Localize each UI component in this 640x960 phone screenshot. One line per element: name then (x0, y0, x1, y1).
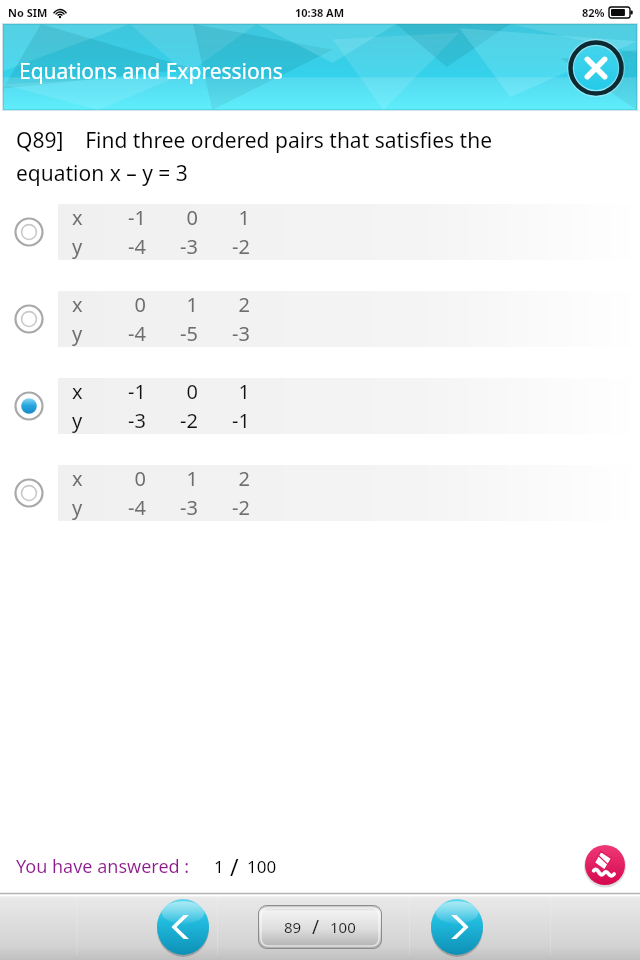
staticText: 1 (238, 204, 250, 231)
staticText: -2 (180, 407, 198, 434)
button[interactable]: x (0, 204, 640, 260)
staticText: 89 (284, 917, 302, 937)
button[interactable]: x (0, 291, 640, 347)
staticText: 2 (238, 291, 250, 318)
staticText: -3 (180, 494, 198, 521)
button[interactable]: Notes (584, 844, 626, 886)
staticText: 82% (582, 5, 605, 20)
staticText: 1 (186, 465, 198, 492)
staticText: 2 (238, 465, 250, 492)
staticText: 1 (186, 291, 198, 318)
staticText: 0 (134, 291, 146, 318)
staticText: -4 (128, 320, 146, 347)
staticText: / (312, 914, 320, 940)
staticText: 0 (186, 204, 198, 231)
button[interactable]: Previous (156, 898, 210, 956)
staticText: y (72, 320, 83, 347)
staticText: -2 (232, 494, 250, 521)
staticText: -4 (128, 494, 146, 521)
staticText: 10:38 AM (295, 5, 345, 20)
staticText: -5 (180, 320, 198, 347)
staticText: y (72, 494, 83, 521)
staticText: equation x – y = 3 (16, 159, 188, 188)
staticText: -3 (128, 407, 146, 434)
button[interactable]: Close (567, 39, 625, 97)
staticText: -4 (128, 233, 146, 260)
staticText: -2 (232, 233, 250, 260)
button[interactable]: x (0, 465, 640, 521)
staticText: Equations and Expressions (19, 57, 283, 86)
button[interactable]: Next (430, 898, 484, 956)
staticText: -3 (180, 233, 198, 260)
staticText: y (72, 407, 83, 434)
staticText: 100 (247, 855, 277, 878)
button[interactable]: 89 (258, 905, 382, 949)
staticText: x (72, 465, 83, 492)
staticText: No SIM (8, 5, 48, 20)
staticText: -1 (232, 407, 250, 434)
staticText: Q89] Find three ordered pairs that satis… (16, 126, 492, 155)
staticText: You have answered : (16, 854, 190, 879)
staticText: y (72, 233, 83, 260)
staticText: x (72, 378, 83, 405)
staticText: 1 (214, 855, 224, 878)
staticText: x (72, 291, 83, 318)
staticText: 0 (134, 465, 146, 492)
staticText: 1 (238, 378, 250, 405)
staticText: -3 (232, 320, 250, 347)
staticText: 100 (330, 917, 356, 937)
staticText: 0 (186, 378, 198, 405)
staticText: -1 (128, 378, 146, 405)
staticText: / (230, 851, 239, 882)
staticText: -1 (128, 204, 146, 231)
button[interactable]: x (0, 378, 640, 434)
staticText: x (72, 204, 83, 231)
